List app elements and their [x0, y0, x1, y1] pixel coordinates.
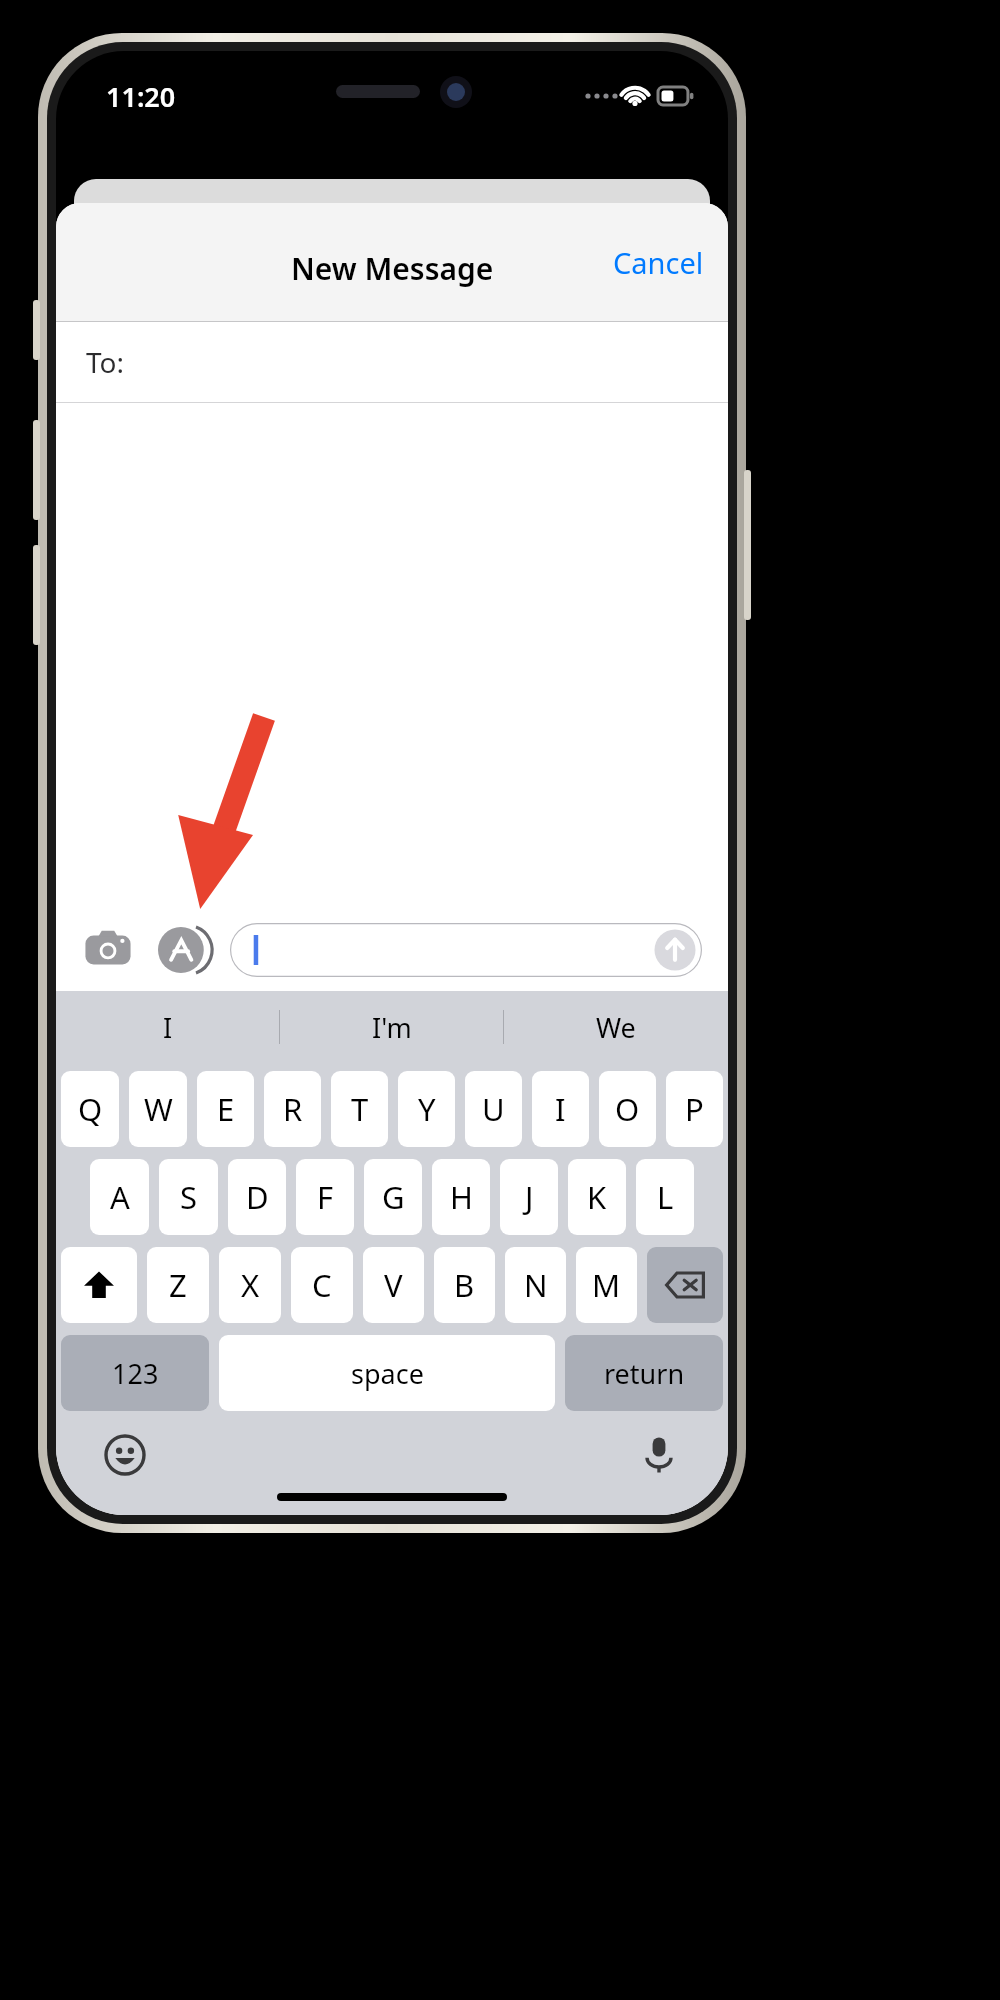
staticText: J: [525, 1176, 534, 1218]
button[interactable]: Shift: [61, 1247, 137, 1323]
staticText: H: [450, 1176, 473, 1218]
button[interactable]: Apps: [156, 922, 212, 978]
button[interactable]: L: [636, 1159, 694, 1235]
button[interactable]: K: [568, 1159, 626, 1235]
button[interactable]: Backspace: [647, 1247, 723, 1323]
staticText: C: [312, 1264, 332, 1306]
staticText: X: [241, 1264, 260, 1306]
button[interactable]: P: [666, 1071, 723, 1147]
button[interactable]: R: [264, 1071, 321, 1147]
button[interactable]: B: [434, 1247, 495, 1323]
staticText: We: [596, 1009, 636, 1046]
button[interactable]: T: [331, 1071, 388, 1147]
button[interactable]: We: [504, 991, 728, 1063]
button[interactable]: A: [90, 1159, 149, 1235]
staticText: P: [685, 1088, 704, 1130]
staticText: Z: [169, 1264, 187, 1306]
button[interactable]: Y: [398, 1071, 455, 1147]
button[interactable]: J: [500, 1159, 558, 1235]
staticText: M: [592, 1264, 621, 1306]
button[interactable]: Cancel: [589, 229, 728, 296]
other: Backspace: [665, 1265, 705, 1305]
button[interactable]: Z: [147, 1247, 209, 1323]
staticText: F: [317, 1176, 334, 1218]
button[interactable]: space: [219, 1335, 555, 1411]
staticText: V: [384, 1264, 403, 1306]
button[interactable]: Q: [61, 1071, 119, 1147]
button[interactable]: X: [219, 1247, 281, 1323]
staticText: N: [524, 1264, 548, 1306]
staticText: I: [163, 1009, 173, 1046]
staticText: G: [382, 1176, 405, 1218]
button[interactable]: O: [599, 1071, 656, 1147]
button[interactable]: V: [363, 1247, 424, 1323]
button[interactable]: H: [432, 1159, 490, 1235]
staticText: B: [454, 1264, 475, 1306]
staticText: R: [283, 1088, 303, 1130]
button[interactable]: Camera: [82, 924, 134, 976]
button[interactable]: G: [364, 1159, 422, 1235]
button[interactable]: 123: [61, 1335, 209, 1411]
staticText: Y: [418, 1088, 436, 1130]
staticText: return: [604, 1355, 685, 1392]
staticText: E: [217, 1088, 235, 1130]
button[interactable]: Emoji: [98, 1428, 152, 1482]
button[interactable]: [230, 923, 702, 977]
button[interactable]: I: [532, 1071, 589, 1147]
button[interactable]: I'm: [280, 991, 504, 1063]
staticText: O: [615, 1088, 640, 1130]
button[interactable]: E: [197, 1071, 254, 1147]
staticText: L: [657, 1176, 674, 1218]
staticText: U: [482, 1088, 505, 1130]
staticText: I'm: [372, 1009, 412, 1046]
button[interactable]: return: [565, 1335, 723, 1411]
staticText: A: [110, 1176, 130, 1218]
staticText: K: [587, 1176, 607, 1218]
staticText: 11:20: [106, 78, 176, 115]
button[interactable]: S: [159, 1159, 218, 1235]
other: Shift: [82, 1268, 116, 1302]
button[interactable]: C: [291, 1247, 353, 1323]
button[interactable]: W: [129, 1071, 187, 1147]
staticText: To:: [86, 343, 125, 381]
button[interactable]: I: [56, 991, 280, 1063]
staticText: W: [144, 1088, 173, 1130]
button[interactable]: U: [465, 1071, 522, 1147]
button[interactable]: N: [505, 1247, 566, 1323]
staticText: Cancel: [613, 243, 704, 282]
button[interactable]: F: [296, 1159, 354, 1235]
staticText: Q: [78, 1088, 103, 1130]
staticText: New Message: [291, 248, 494, 289]
staticText: I: [555, 1088, 566, 1130]
button[interactable]: M: [576, 1247, 637, 1323]
button[interactable]: D: [228, 1159, 286, 1235]
staticText: D: [246, 1176, 269, 1218]
staticText: 123: [112, 1355, 159, 1392]
staticText: space: [351, 1355, 424, 1392]
button[interactable]: To:: [56, 322, 728, 402]
button[interactable]: Dictation: [632, 1428, 686, 1482]
staticText: T: [351, 1088, 369, 1130]
staticText: S: [180, 1176, 198, 1218]
